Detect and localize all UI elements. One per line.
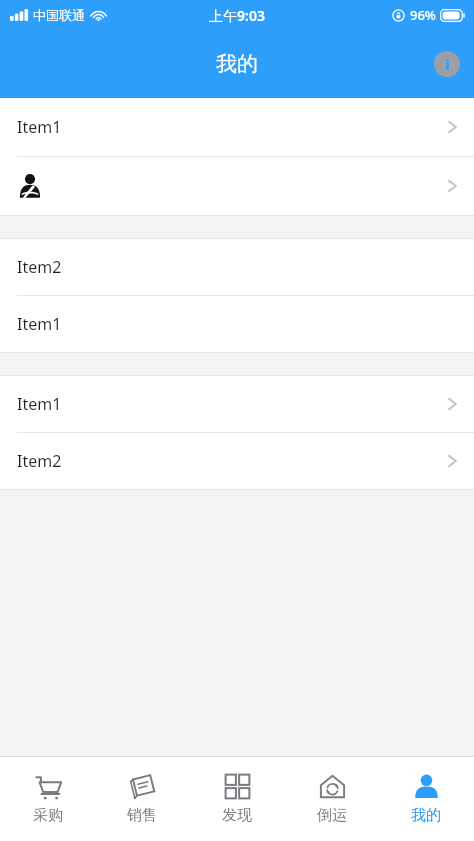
staticText: 采购: [33, 806, 63, 825]
staticText: 倒运: [317, 806, 347, 825]
button[interactable]: Info: [434, 51, 460, 77]
button[interactable]: 发现: [190, 767, 284, 831]
button[interactable]: Item1: [0, 296, 474, 352]
staticText: 中国联通: [33, 7, 85, 23]
staticText: Item1: [17, 313, 62, 335]
button[interactable]: Item2: [0, 239, 474, 295]
staticText: Item2: [17, 450, 62, 472]
staticText: 销售: [127, 806, 157, 825]
button[interactable]: Item1: [0, 376, 474, 432]
button[interactable]: Item1: [0, 98, 474, 156]
staticText: Item1: [17, 393, 62, 415]
button[interactable]: 销售: [95, 767, 189, 831]
button[interactable]: 采购: [1, 767, 95, 831]
button[interactable]: Profile: [0, 157, 474, 215]
staticText: 我的: [216, 51, 258, 77]
staticText: 96%: [410, 6, 436, 24]
staticText: Item2: [17, 256, 62, 278]
staticText: 上午9:03: [209, 6, 265, 25]
button[interactable]: Item2: [0, 433, 474, 489]
button[interactable]: 我的: [379, 767, 473, 831]
staticText: 我的: [411, 806, 441, 825]
staticText: i: [445, 54, 450, 74]
staticText: Item1: [17, 116, 62, 138]
button[interactable]: 倒运: [285, 767, 379, 831]
staticText: 发现: [222, 806, 252, 825]
